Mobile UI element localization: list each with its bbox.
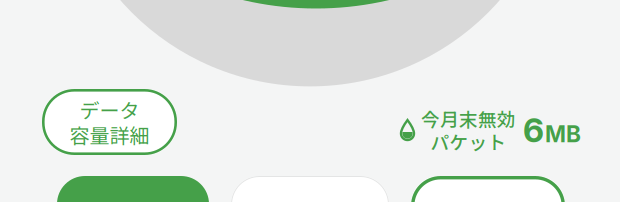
staticText: 容量詳細 [69,120,149,149]
staticText: 今月末無効 [421,105,516,132]
button[interactable]: Secondary action [231,176,389,202]
button[interactable]: Primary action [57,176,209,202]
staticText: 6 [523,110,544,150]
staticText: データ [79,95,139,124]
button[interactable]: データ [42,89,177,155]
staticText: パケット [430,128,506,155]
button[interactable]: Tertiary action [411,176,565,202]
staticText: MB [545,120,581,148]
